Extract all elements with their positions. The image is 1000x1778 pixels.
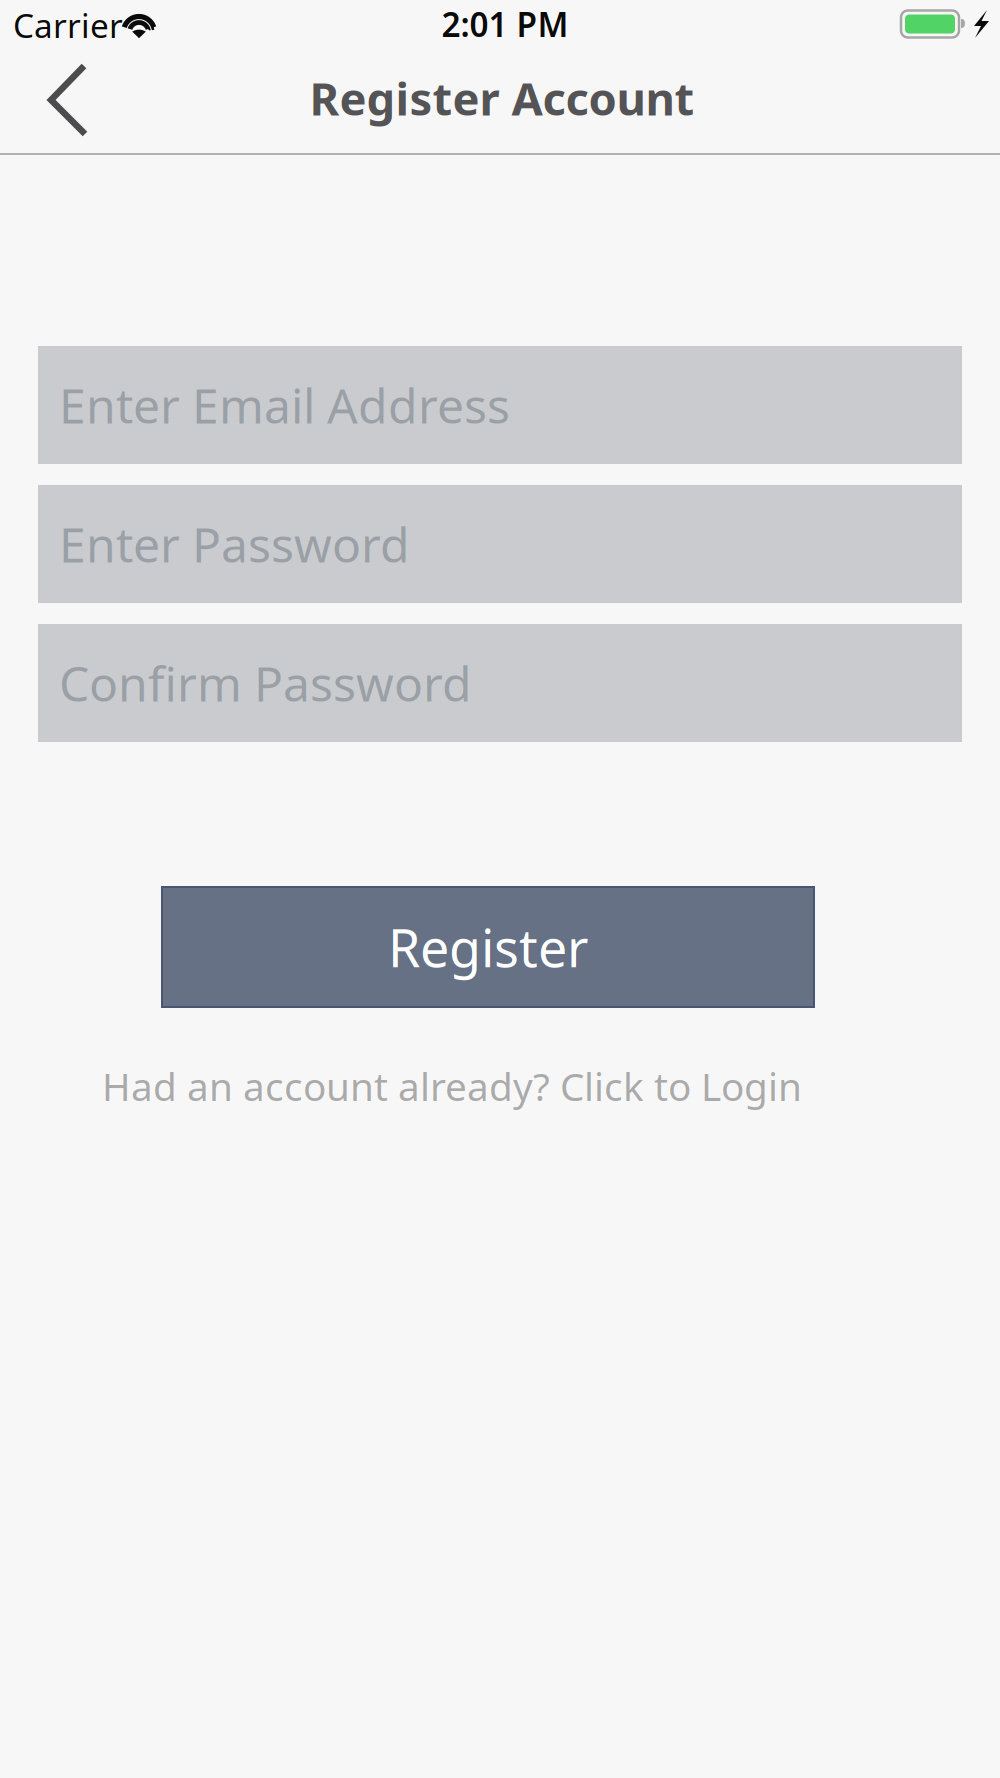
staticText: 2:01 PM — [441, 2, 568, 46]
staticText: Enter Email Address — [59, 373, 510, 437]
button[interactable]: Back — [27, 45, 107, 155]
staticText: Enter Password — [59, 512, 410, 576]
staticText: Register Account — [309, 68, 694, 128]
button[interactable]: Confirm Password — [38, 624, 962, 742]
staticText: Confirm Password — [59, 651, 472, 715]
button[interactable]: Had an account already? Click to Login — [102, 1060, 802, 1112]
button[interactable]: Enter Email Address — [38, 346, 962, 464]
staticText: Had an account already? Click to Login — [102, 1060, 802, 1112]
button[interactable]: Register — [162, 887, 814, 1007]
button[interactable]: Enter Password — [38, 485, 962, 603]
staticText: Register — [388, 912, 588, 982]
staticText: Carrier — [13, 3, 123, 47]
